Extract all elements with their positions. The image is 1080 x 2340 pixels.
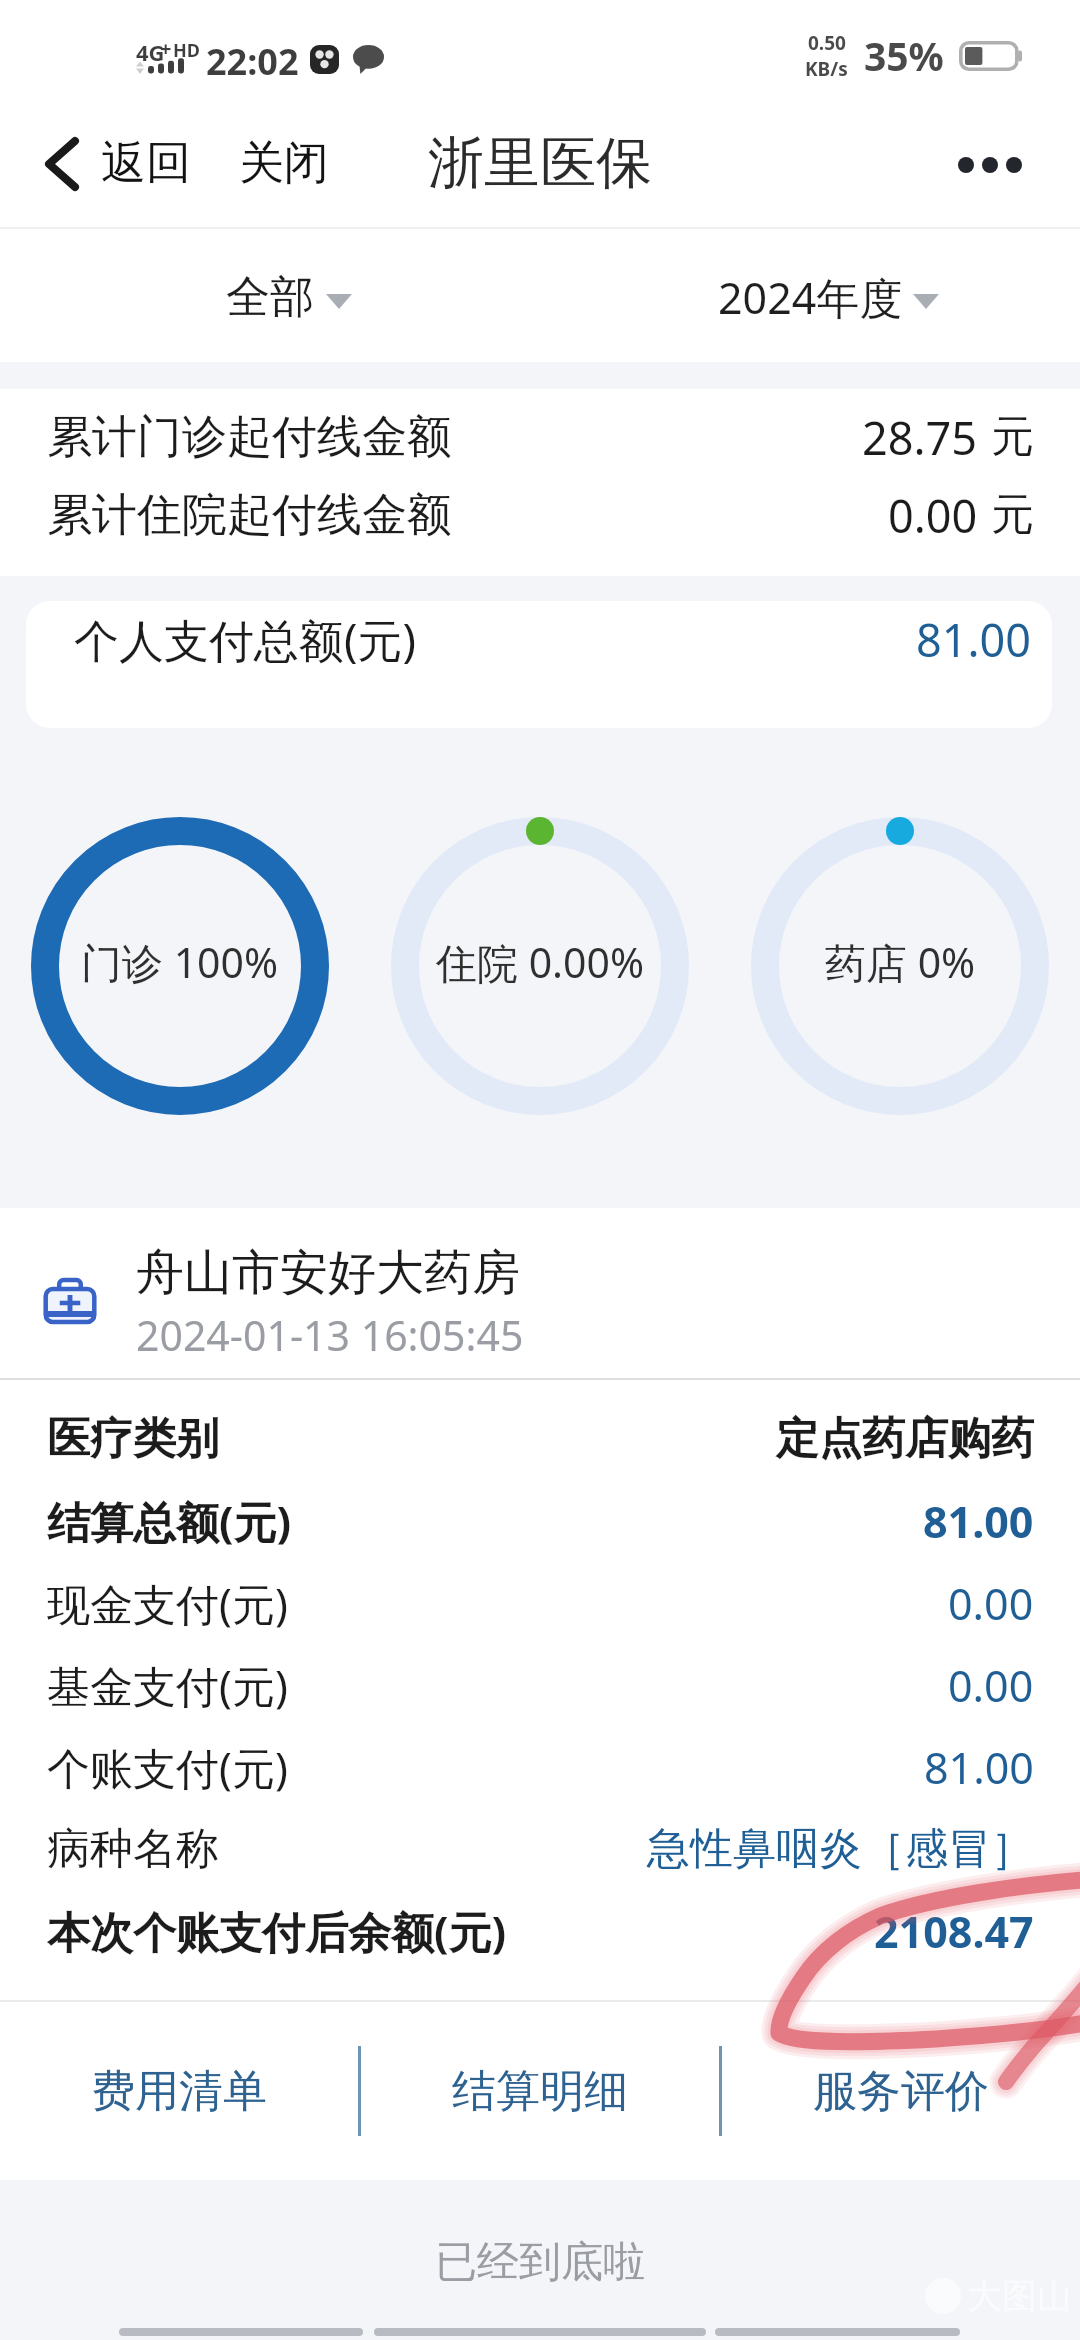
staticText: 舟山市安好大药房: [136, 1243, 520, 1303]
button[interactable]: 返回: [0, 117, 195, 210]
staticText: 81.00: [923, 1492, 1034, 1551]
staticText: 28.75: [862, 407, 978, 468]
staticText: 药店 0%: [825, 934, 976, 990]
staticText: 浙里医保: [428, 128, 652, 199]
button[interactable]: More options: [936, 127, 1044, 203]
staticText: 结算明细: [452, 2064, 628, 2119]
staticText: 2024年度: [718, 268, 903, 327]
staticText: 35%: [864, 29, 944, 82]
staticText: 个人支付总额(元): [74, 609, 417, 670]
button[interactable]: 结算明细: [361, 2002, 719, 2180]
button[interactable]: 舟山市安好大药房: [0, 1208, 1080, 1378]
staticText: 81.00: [924, 1738, 1034, 1797]
staticText: 急性鼻咽炎［感冒］: [647, 1822, 1034, 1876]
button[interactable]: 个人支付总额(元): [26, 601, 1052, 728]
staticText: 已经到底啦: [435, 2236, 645, 2289]
button[interactable]: 服务评价: [722, 2002, 1080, 2180]
staticText: 现金支付(元): [47, 1574, 288, 1633]
staticText: 个账支付(元): [47, 1738, 288, 1797]
staticText: 累计住院起付线金额: [47, 487, 452, 544]
staticText: 2024-01-13 16:05:45: [136, 1307, 524, 1363]
staticText: 元: [991, 410, 1034, 464]
staticText: 服务评价: [813, 2064, 989, 2119]
staticText: 基金支付(元): [47, 1656, 288, 1715]
staticText: 0.50: [808, 30, 846, 56]
staticText: 2108.47: [874, 1902, 1034, 1961]
staticText: 全部: [226, 270, 314, 325]
staticText: HD: [173, 38, 200, 63]
staticText: 定点药店购药: [776, 1412, 1034, 1466]
button[interactable]: 2024年度: [540, 232, 1080, 362]
staticText: 住院 0.00%: [436, 934, 645, 990]
button[interactable]: 关闭: [229, 117, 339, 210]
staticText: 0.00: [948, 1574, 1034, 1633]
staticText: 4G: [136, 37, 165, 67]
staticText: 0.00: [948, 1656, 1034, 1715]
staticText: 元: [991, 488, 1034, 542]
staticText: 返回: [101, 135, 191, 192]
staticText: +: [160, 35, 172, 62]
staticText: 医疗类别: [47, 1412, 219, 1466]
staticText: 81.00: [916, 609, 1032, 670]
staticText: 病种名称: [47, 1822, 219, 1876]
staticText: 费用清单: [91, 2064, 267, 2119]
staticText: 0.00: [888, 485, 978, 546]
staticText: 结算总额(元): [47, 1492, 292, 1551]
button[interactable]: 费用清单: [0, 2002, 358, 2180]
staticText: 门诊 100%: [81, 934, 279, 990]
staticText: 累计门诊起付线金额: [47, 409, 452, 466]
staticText: 关闭: [239, 135, 329, 192]
button[interactable]: 全部: [0, 232, 540, 362]
staticText: 22:02: [206, 37, 299, 86]
staticText: 本次个账支付后余额(元): [47, 1902, 507, 1961]
staticText: KB/s: [805, 56, 848, 82]
